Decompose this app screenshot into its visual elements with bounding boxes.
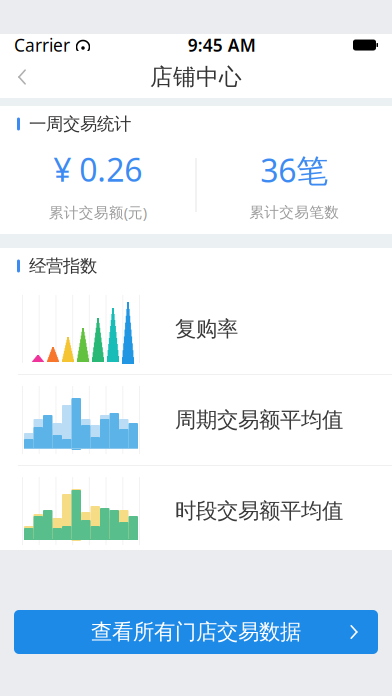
staticText: 累计交易额(元) — [49, 202, 147, 222]
staticText: 时段交易额平均值 — [175, 498, 343, 524]
staticText: 周期交易额平均值 — [175, 407, 343, 433]
staticText: 店铺中心 — [150, 63, 242, 91]
staticText: 一周交易统计 — [29, 113, 131, 135]
staticText: 36笔 — [260, 149, 328, 191]
staticText: 复购率 — [175, 316, 238, 342]
button[interactable]: 周期交易额平均值 — [0, 375, 392, 465]
staticText: ¥ 0.26 — [53, 148, 142, 190]
staticText: 9:45 AM — [188, 33, 256, 56]
staticText: 经营指数 — [29, 255, 97, 277]
staticText: Carrier — [14, 33, 70, 56]
button[interactable]: 查看所有门店交易数据 — [0, 610, 392, 654]
staticText: 查看所有门店交易数据 — [91, 619, 301, 645]
staticText: 累计交易笔数 — [249, 203, 339, 221]
button[interactable]: 返回 — [0, 56, 44, 98]
button[interactable]: 复购率 — [0, 284, 392, 374]
button[interactable]: 时段交易额平均值 — [0, 466, 392, 556]
